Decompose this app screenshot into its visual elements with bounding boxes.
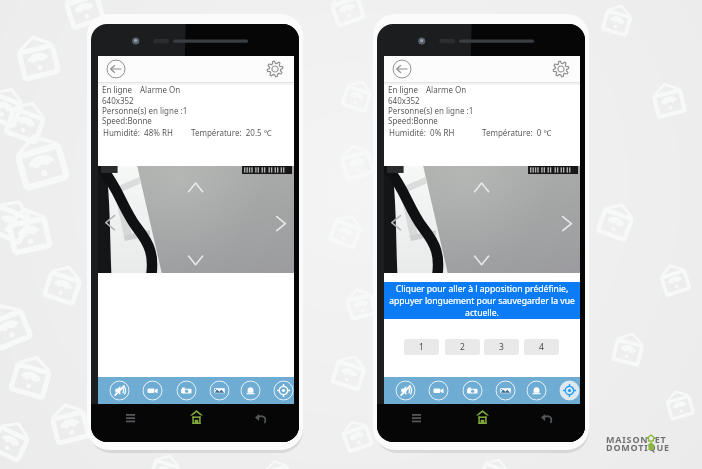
- button[interactable]: Presets: [273, 380, 294, 401]
- button[interactable]: Gallery: [495, 380, 516, 401]
- button[interactable]: Alarm: [526, 380, 547, 401]
- staticText: 3: [499, 341, 504, 353]
- button[interactable]: Back: [392, 59, 412, 79]
- staticText: Alarme On: [140, 84, 181, 95]
- button[interactable]: 2: [445, 339, 480, 355]
- staticText: Speed:Bonne: [102, 115, 152, 126]
- staticText: 1: [419, 341, 424, 353]
- staticText: Température: 20.5 ℃: [191, 127, 272, 138]
- staticText: 2: [460, 341, 465, 353]
- button[interactable]: Record: [428, 380, 449, 401]
- button[interactable]: Settings: [552, 60, 570, 78]
- staticText: Humidité: 0% RH: [389, 127, 455, 138]
- button[interactable]: Alarm: [240, 380, 261, 401]
- button[interactable]: Snapshot: [176, 380, 197, 401]
- button[interactable]: Snapshot: [462, 380, 483, 401]
- button[interactable]: Home: [186, 407, 206, 427]
- button[interactable]: Back: [106, 59, 126, 79]
- button[interactable]: 4: [524, 339, 559, 355]
- button[interactable]: 3: [484, 339, 519, 355]
- staticText: Personne(s) en ligne :1: [102, 105, 188, 116]
- staticText: Température: 0 ℃: [482, 127, 552, 138]
- staticText: 640x352: [102, 95, 134, 106]
- staticText: MAISON ET: [606, 433, 667, 445]
- button[interactable]: Record: [142, 380, 163, 401]
- staticText: DOMOTIQUE: [606, 441, 670, 453]
- staticText: Speed:Bonne: [388, 115, 438, 126]
- button[interactable]: Menu: [406, 408, 426, 428]
- staticText: En ligne: [388, 84, 418, 95]
- button[interactable]: Gallery: [209, 380, 230, 401]
- button[interactable]: 1: [404, 339, 439, 355]
- button[interactable]: Home: [472, 407, 492, 427]
- staticText: En ligne: [102, 84, 132, 95]
- button[interactable]: Presets: [559, 380, 580, 401]
- staticText: Cliquer pour aller à l apposition prédéf…: [385, 283, 579, 319]
- button[interactable]: Menu: [120, 408, 140, 428]
- button[interactable]: Back: [537, 408, 557, 428]
- button[interactable]: Back: [251, 408, 271, 428]
- staticText: Humidité: 48% RH: [103, 127, 173, 138]
- staticText: Personne(s) en ligne :1: [388, 105, 474, 116]
- staticText: 640x352: [388, 95, 420, 106]
- staticText: Alarme On: [426, 84, 467, 95]
- button[interactable]: Mute: [395, 380, 416, 401]
- button[interactable]: Settings: [266, 60, 284, 78]
- button[interactable]: Mute: [109, 380, 130, 401]
- staticText: 4: [539, 341, 544, 353]
